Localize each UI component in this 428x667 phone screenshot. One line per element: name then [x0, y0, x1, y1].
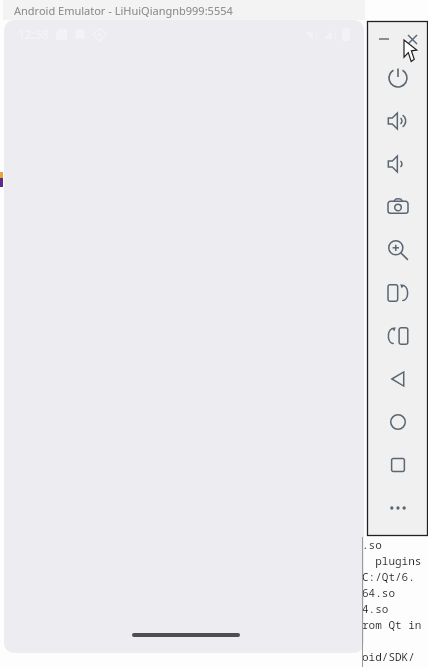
staticText: rom Qt in: [362, 617, 422, 633]
button[interactable]: More: [368, 486, 428, 529]
staticText: oid/SDK/: [362, 649, 415, 665]
button[interactable]: Rotate left: [368, 271, 428, 314]
button[interactable]: Close: [401, 28, 423, 50]
button[interactable]: Power: [368, 56, 428, 99]
button[interactable]: Minimize: [373, 28, 395, 50]
staticText: 64.so: [362, 585, 395, 601]
staticText: C:/Qt/6.: [362, 569, 415, 585]
button[interactable]: Home: [368, 400, 428, 443]
staticText: 4.so: [362, 601, 389, 617]
button[interactable]: Rotate right: [368, 314, 428, 357]
button[interactable]: Take screenshot: [368, 185, 428, 228]
button[interactable]: Volume up: [368, 99, 428, 142]
staticText: Android Emulator - LiHuiQiangnb999:5554: [14, 3, 233, 18]
button[interactable]: Zoom: [368, 228, 428, 271]
staticText: .so: [362, 537, 382, 553]
button[interactable]: Overview: [368, 443, 428, 486]
staticText: plugins: [362, 553, 422, 569]
button[interactable]: Volume down: [368, 142, 428, 185]
button[interactable]: Back: [368, 357, 428, 400]
